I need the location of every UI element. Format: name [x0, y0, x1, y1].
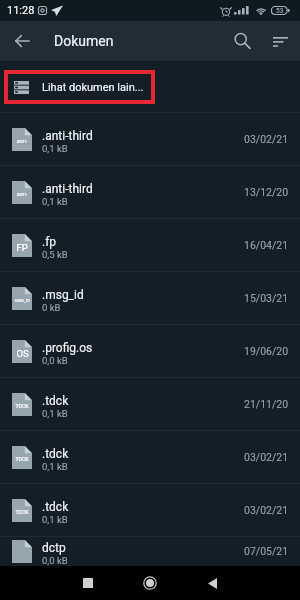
staticText: TDCK [15, 403, 29, 409]
staticText: 53 [276, 7, 284, 15]
button[interactable]: dctp [0, 537, 300, 566]
staticText: ANTI-THIRD [12, 139, 32, 144]
button[interactable]: Lihat dokumen lain... [0, 61, 300, 113]
staticText: TDCK [15, 509, 29, 515]
button[interactable]: Back [0, 21, 45, 61]
staticText: 11:28 [7, 4, 35, 17]
button[interactable]: Search [222, 21, 262, 61]
staticText: 07/05/21 [244, 545, 289, 557]
staticText: 0,1 kB [42, 461, 68, 472]
button[interactable]: Recents [68, 566, 108, 600]
button[interactable]: Back [192, 566, 232, 600]
button[interactable]: TDCK [0, 431, 300, 483]
staticText: 03/02/21 [244, 133, 289, 145]
staticText: .anti-third [42, 129, 93, 143]
button[interactable]: Home [130, 566, 170, 600]
staticText: 0,0 kB [42, 555, 68, 566]
staticText: 21/11/20 [244, 398, 289, 410]
staticText: 0,1 kB [42, 143, 68, 154]
staticText: .tdck [42, 394, 69, 408]
button[interactable]: Sort [262, 23, 299, 60]
staticText: 03/02/21 [244, 451, 289, 463]
staticText: .anti-third [42, 182, 93, 196]
staticText: .tdck [42, 447, 69, 461]
button[interactable]: FP [0, 219, 300, 271]
button[interactable]: MSG_ID [0, 272, 300, 324]
staticText: 03/02/21 [244, 504, 289, 516]
staticText: OS [16, 348, 29, 359]
staticText: 0 kB [42, 302, 61, 313]
staticText: .msg_id [42, 288, 84, 302]
button[interactable]: ANTI-THIRD [0, 113, 300, 165]
staticText: ANTI-THIRD [12, 192, 32, 197]
staticText: 15/03/21 [244, 292, 289, 304]
button[interactable]: TDCK [0, 484, 300, 536]
button[interactable]: ANTI-THIRD [0, 166, 300, 218]
staticText: .fp [42, 235, 57, 249]
staticText: FP [16, 242, 28, 253]
button[interactable]: OS [0, 325, 300, 377]
staticText: 0,0 kB [42, 355, 68, 366]
staticText: .profig.os [42, 341, 93, 355]
staticText: 0,5 kB [42, 249, 68, 260]
staticText: 0,1 kB [42, 408, 68, 419]
staticText: 13/12/20 [244, 186, 289, 198]
staticText: 0,1 kB [42, 196, 68, 207]
button[interactable]: TDCK [0, 378, 300, 430]
staticText: MSG_ID [15, 298, 30, 303]
staticText: 19/06/20 [244, 345, 289, 357]
staticText: Dokumen [54, 33, 114, 49]
staticText: TDCK [15, 456, 29, 462]
staticText: dctp [42, 541, 66, 555]
staticText: 16/04/21 [244, 239, 289, 251]
staticText: .tdck [42, 500, 69, 514]
staticText: 0,1 kB [42, 514, 68, 525]
staticText: Lihat dokumen lain... [42, 81, 144, 94]
